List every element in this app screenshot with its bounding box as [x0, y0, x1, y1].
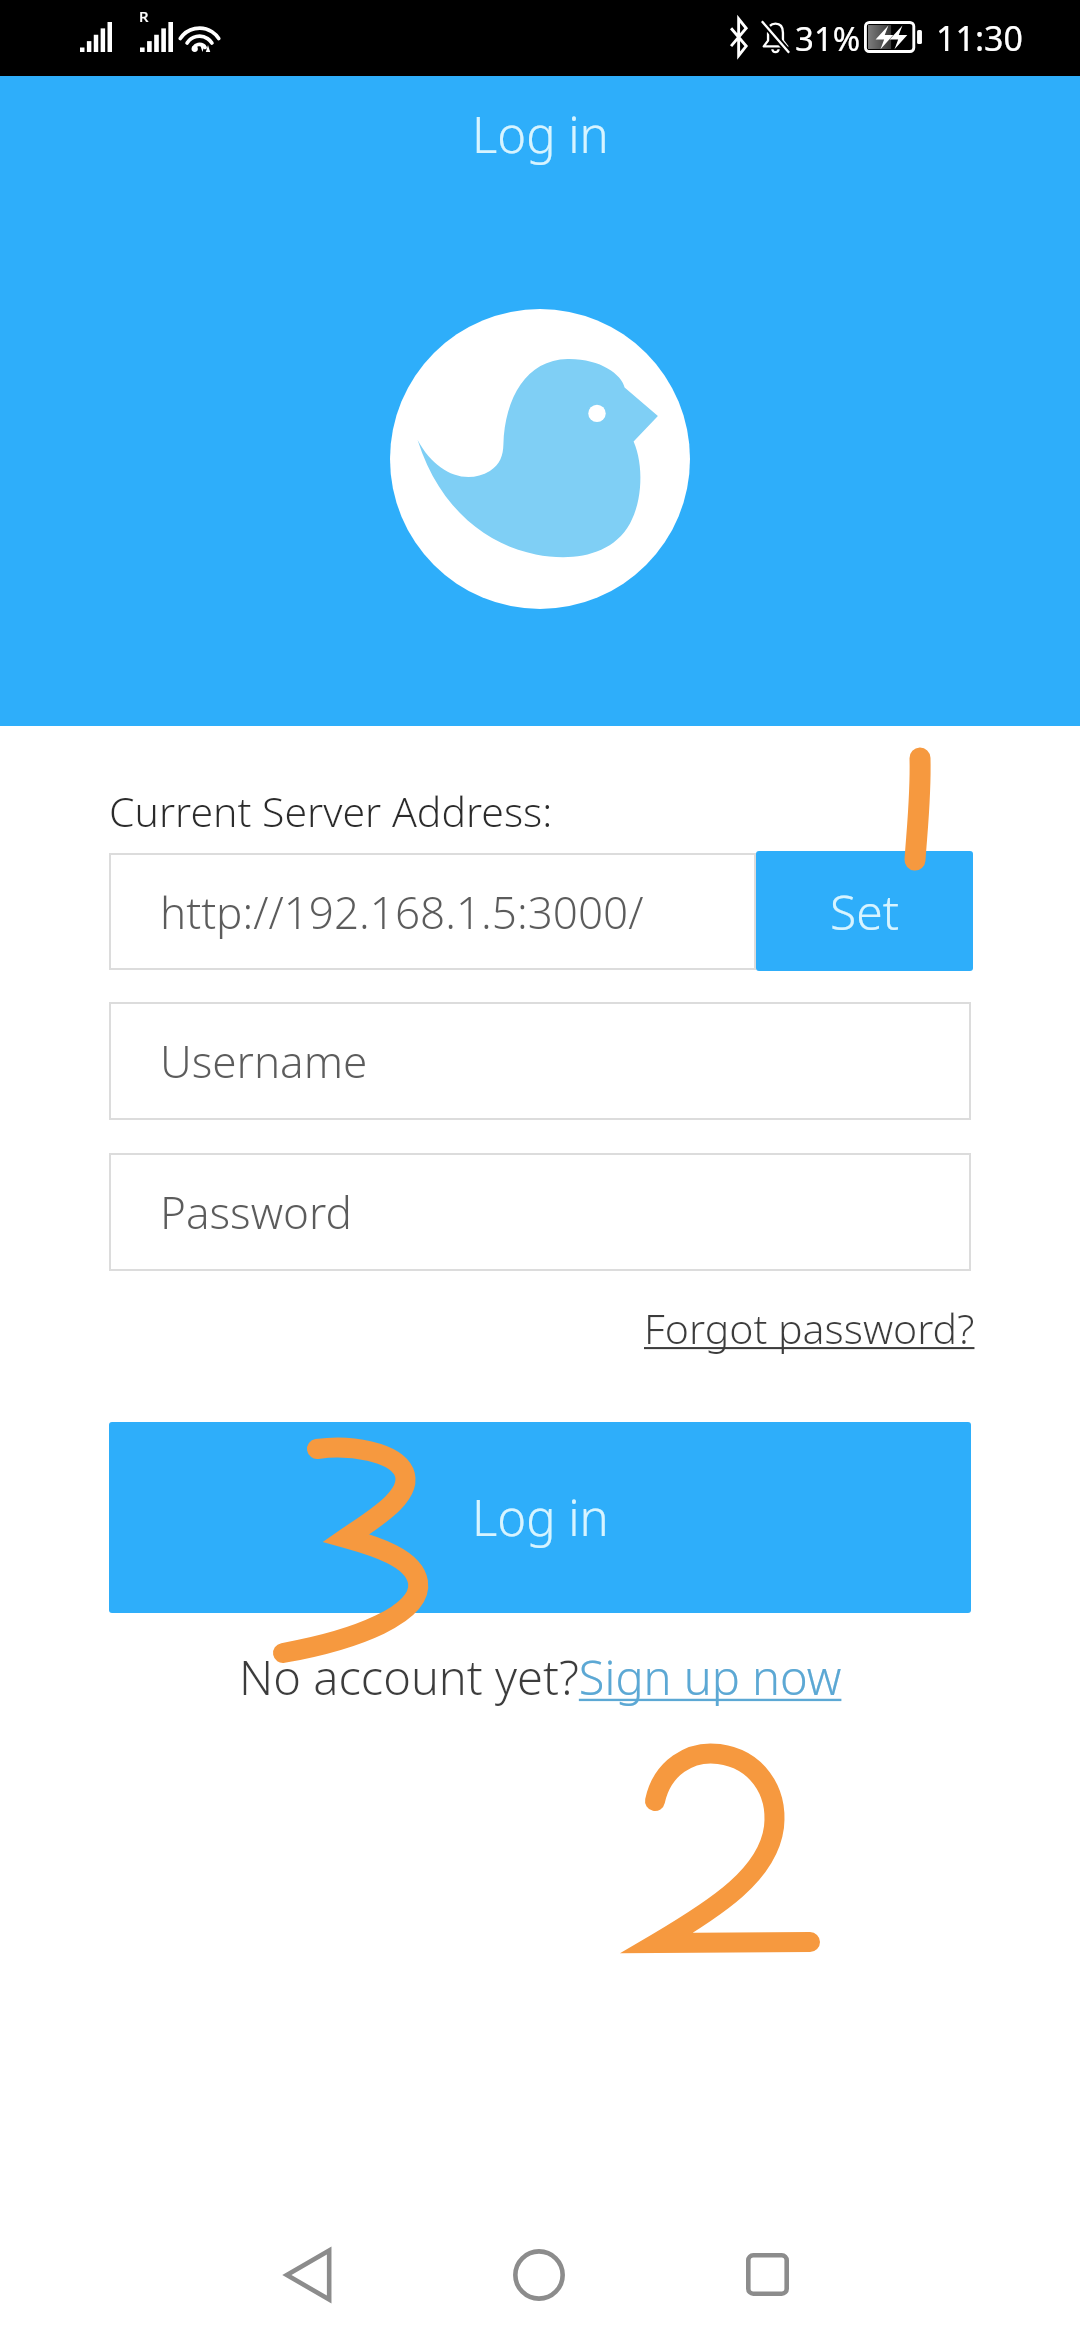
- button[interactable]: Username: [109, 1002, 971, 1120]
- button[interactable]: Back: [233, 2208, 383, 2340]
- button[interactable]: Set: [756, 851, 973, 971]
- staticText: Password: [160, 1182, 352, 1242]
- staticText: Username: [160, 1031, 368, 1091]
- button[interactable]: Forgot password?: [644, 1300, 975, 1356]
- staticText: http://192.168.1.5:3000/: [160, 882, 644, 942]
- button[interactable]: No account yet?Sign up now: [239, 1645, 842, 1709]
- button[interactable]: Password: [109, 1153, 971, 1271]
- staticText: Current Server Address:: [109, 783, 553, 839]
- staticText: 11:30: [936, 15, 1023, 61]
- staticText: Forgot password?: [644, 1300, 975, 1356]
- button[interactable]: http://192.168.1.5:3000/: [109, 853, 756, 970]
- staticText: 31%: [795, 16, 861, 61]
- button[interactable]: Log in: [109, 1422, 971, 1613]
- staticText: Set: [830, 879, 900, 944]
- staticText: R: [139, 6, 149, 26]
- staticText: Log in: [472, 1484, 609, 1551]
- button[interactable]: Home: [464, 2208, 614, 2340]
- staticText: Log in: [472, 101, 609, 168]
- button[interactable]: Recent apps: [692, 2208, 842, 2340]
